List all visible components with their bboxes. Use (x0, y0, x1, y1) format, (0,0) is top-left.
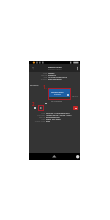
staticText: pixels, fps, kbit/s (46, 118, 61, 120)
staticText: PREVIEW READY (51, 91, 64, 93)
staticText: Base Rendered (48, 78, 62, 80)
staticText: Contains (29, 114, 45, 116)
button[interactable]: Play clip (38, 105, 44, 111)
staticText: to stream (54, 93, 61, 95)
staticText: Source (29, 74, 47, 76)
button[interactable]: Navigate up (29, 64, 36, 72)
staticText: device-01 (48, 74, 57, 76)
staticText: Type (29, 72, 47, 74)
staticText: Device Scan (48, 65, 62, 68)
staticText: Title (29, 112, 45, 114)
staticText: 14.6 MB (15283184 b) (48, 76, 68, 78)
staticText: Enhances (30, 84, 39, 87)
staticText: Quality (29, 78, 47, 80)
staticText: Unit (29, 118, 45, 120)
button[interactable]: More options (75, 64, 80, 72)
staticText: tap to expand (51, 100, 62, 102)
staticText: 1080x1920 px - 30 fps - h264 (46, 114, 72, 116)
staticText: rec 0:12 (72, 95, 79, 97)
staticText: BlueStream/001 (46, 116, 61, 118)
staticText: 2024-05-11 recording 0041 (46, 112, 70, 114)
staticText: 1. (43, 84, 47, 90)
staticText: Size (29, 76, 47, 78)
staticText: 2. (32, 101, 36, 107)
staticText: Frame Type (29, 120, 45, 122)
staticText: jpeg (46, 120, 50, 122)
staticText: bluetooth details (48, 68, 62, 70)
button[interactable]: PREVIEW READY (48, 88, 71, 100)
staticText: Source (29, 116, 45, 118)
staticText: Stream (48, 72, 55, 74)
button[interactable]: Record (73, 106, 78, 110)
